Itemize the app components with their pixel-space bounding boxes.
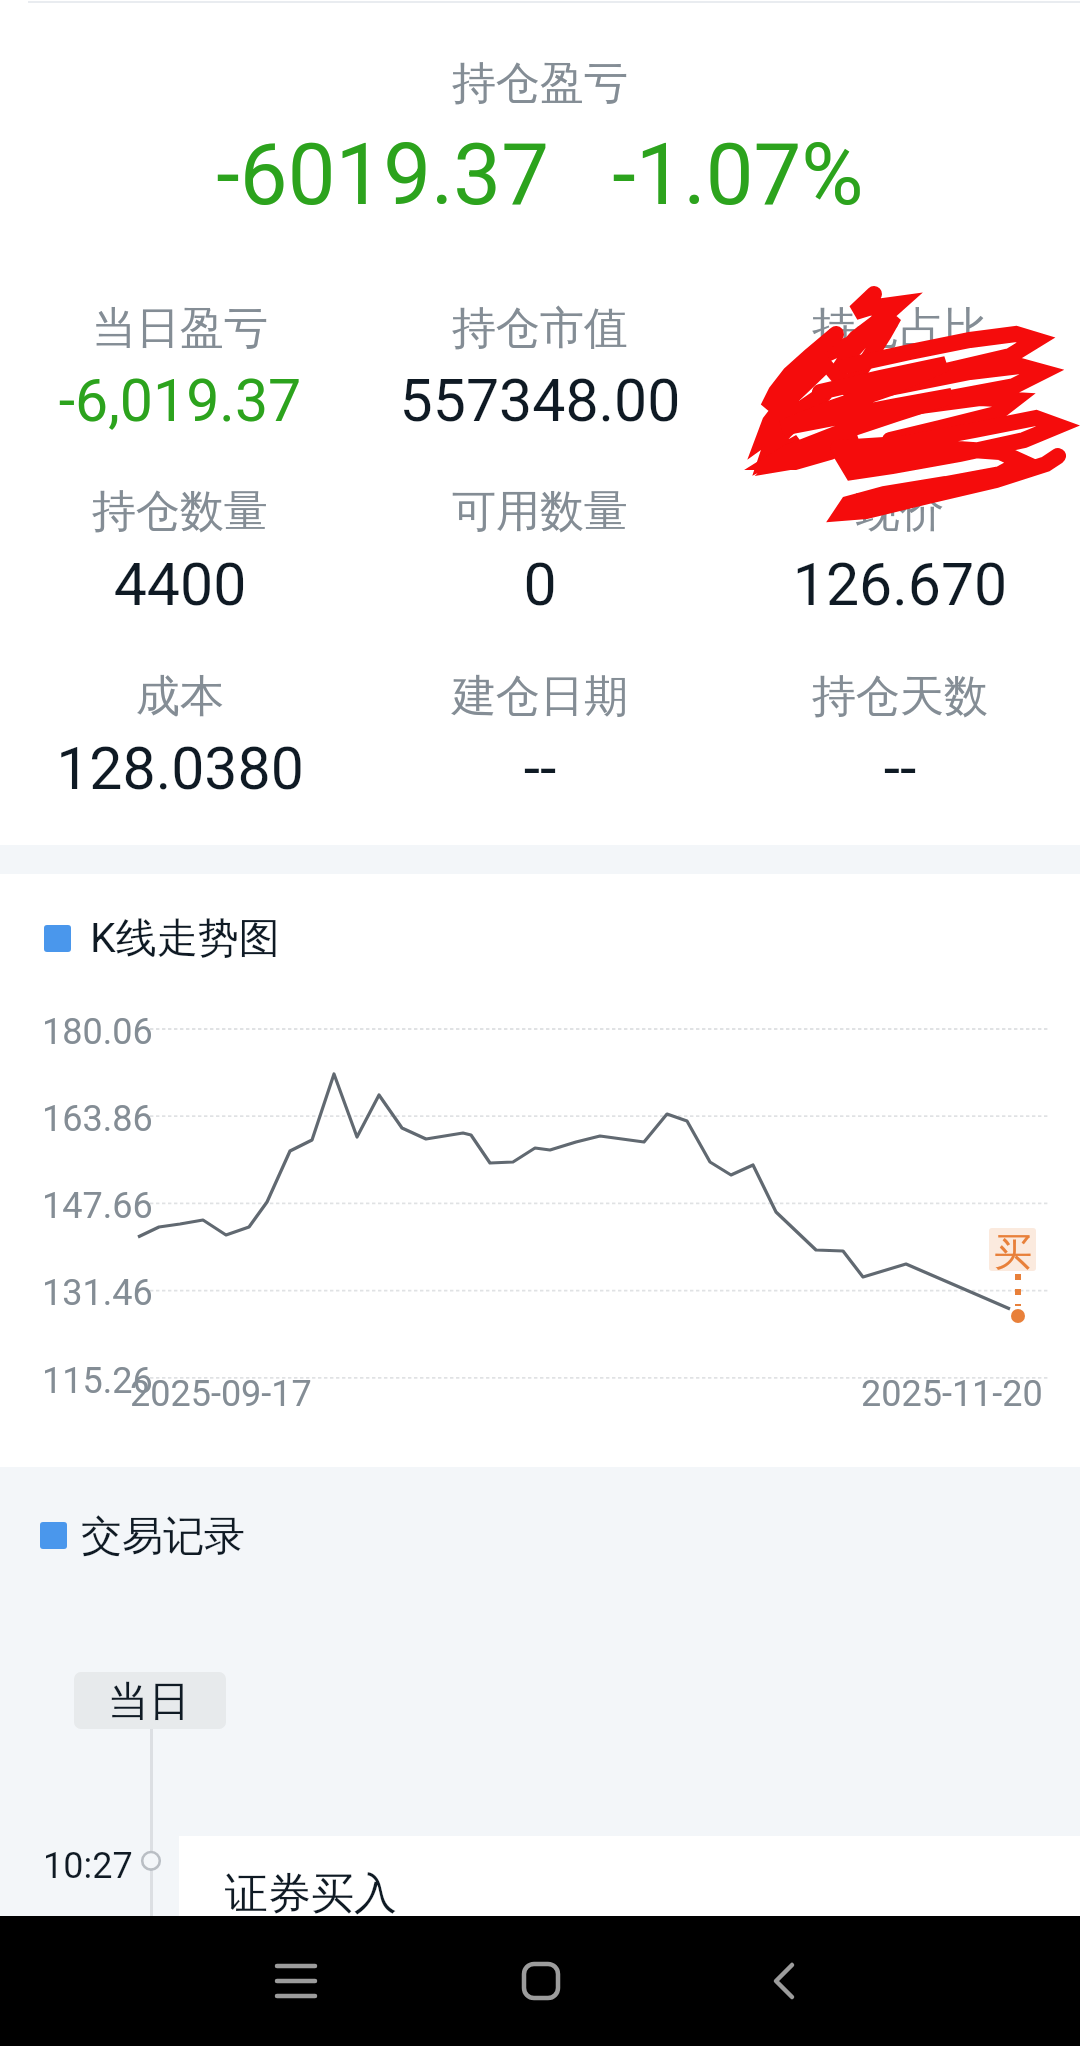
staticText: 现价: [720, 484, 1080, 539]
staticText: 2025-09-17: [130, 1373, 312, 1415]
staticText: 180.06: [42, 1011, 153, 1053]
button[interactable]: Back: [684, 1931, 884, 2031]
staticText: 557348.00: [360, 366, 720, 435]
staticText: -6,019.37: [0, 366, 360, 435]
staticText: 持仓市值: [360, 301, 720, 356]
button[interactable]: 证券买入: [179, 1836, 1080, 1956]
staticText: 131.46: [42, 1272, 153, 1314]
staticText: 交易记录: [81, 1511, 245, 1563]
staticText: 126.670: [720, 550, 1080, 619]
staticText: 持仓盈亏: [0, 56, 1080, 111]
staticText: 证券买入: [225, 1867, 397, 1921]
staticText: 147.66: [42, 1185, 153, 1227]
staticText: 成本: [0, 669, 360, 724]
staticText: K线走势图: [90, 913, 280, 965]
staticText: 可用数量: [360, 484, 720, 539]
button[interactable]: Home: [441, 1931, 641, 2031]
staticText: --: [360, 734, 720, 803]
staticText: 建仓日期: [360, 669, 720, 724]
staticText: 买: [994, 1228, 1032, 1271]
staticText: 当日: [108, 1676, 190, 1728]
button[interactable]: [720, 287, 1080, 421]
staticText: 2025-11-20: [861, 1373, 1043, 1415]
staticText: 4400: [0, 550, 360, 619]
staticText: -6019.37 -1.07%: [0, 125, 1080, 225]
staticText: 当日盈亏: [0, 301, 360, 356]
button[interactable]: 当日: [74, 1672, 226, 1729]
button[interactable]: [0, 287, 360, 421]
button[interactable]: [0, 655, 360, 789]
staticText: 10:27: [43, 1845, 133, 1887]
button[interactable]: [360, 470, 720, 604]
button[interactable]: [720, 655, 1080, 789]
button[interactable]: [720, 470, 1080, 604]
staticText: [720, 366, 1080, 435]
staticText: --: [720, 734, 1080, 803]
button[interactable]: [360, 287, 720, 421]
staticText: 115.26: [42, 1360, 153, 1402]
button[interactable]: K线走势图: [0, 874, 1080, 1467]
button[interactable]: [360, 655, 720, 789]
staticText: 0: [360, 550, 720, 619]
staticText: 持仓天数: [720, 669, 1080, 724]
button[interactable]: [0, 470, 360, 604]
staticText: 163.86: [42, 1098, 153, 1140]
staticText: 持仓数量: [0, 484, 360, 539]
staticText: 128.0380: [0, 734, 360, 803]
button[interactable]: Menu: [196, 1931, 396, 2031]
staticText: 持仓占比: [720, 301, 1080, 356]
